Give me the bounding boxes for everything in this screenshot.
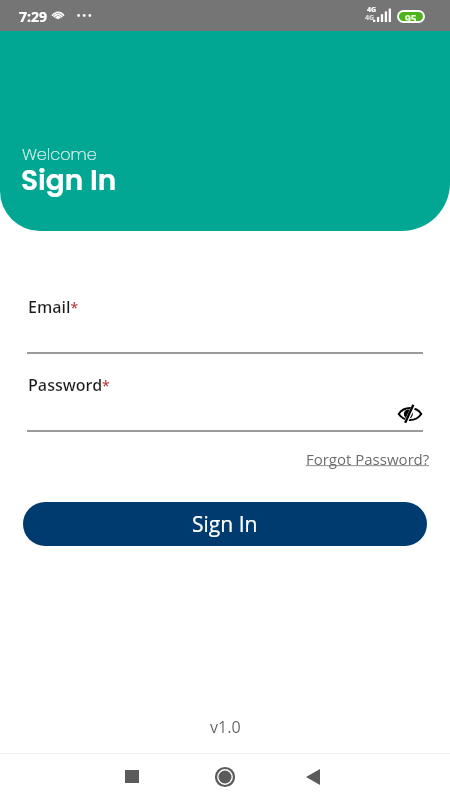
staticText: Password*: [28, 374, 110, 396]
staticText: Sign In: [21, 161, 117, 200]
staticText: 4G: [365, 13, 375, 23]
staticText: 7:29: [19, 7, 47, 26]
button[interactable]: Back: [290, 753, 336, 800]
staticText: Welcome: [22, 143, 97, 165]
button[interactable]: Email input field: [27, 293, 423, 354]
button[interactable]: Sign In: [23, 502, 427, 546]
button[interactable]: Forgot Password?: [306, 449, 430, 469]
staticText: Forgot Password?: [306, 449, 430, 469]
staticText: Email*: [28, 296, 79, 318]
staticText: 4G: [367, 5, 377, 15]
button[interactable]: Show password: [396, 400, 424, 428]
button[interactable]: Home: [202, 753, 248, 800]
staticText: v1.0: [210, 716, 241, 738]
staticText: 95: [405, 12, 417, 21]
staticText: Sign In: [192, 510, 258, 539]
button[interactable]: Password input field: [27, 371, 423, 432]
button[interactable]: Recent apps: [109, 753, 155, 800]
